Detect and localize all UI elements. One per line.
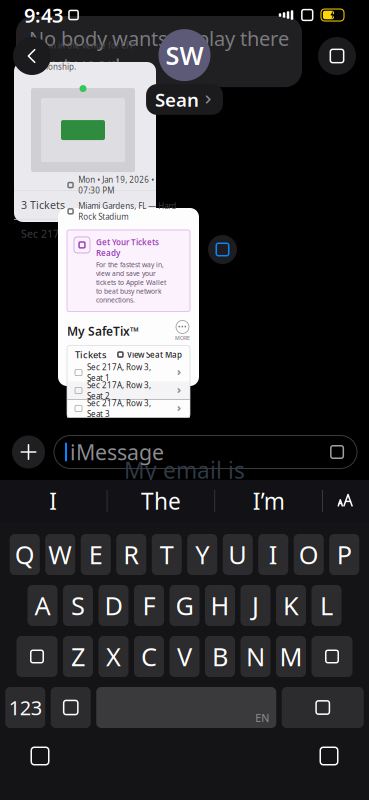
staticText: X [106,640,121,673]
button[interactable]: P [329,534,359,575]
staticText: Sec 217A, Row 3, Seat 3 [87,398,151,419]
staticText: L [320,589,333,622]
staticText: My email is [124,455,245,485]
staticText: Tickets [75,348,107,361]
button[interactable]: Y [187,534,217,575]
staticText: Miami Gardens, FL — Hard Rock Stadium [78,201,176,222]
button[interactable]: X [98,636,128,677]
staticText: A [34,589,50,622]
staticText: M [279,640,302,673]
staticText: ••• [178,322,187,331]
button[interactable]: Back [13,37,51,75]
staticText: Q [15,538,35,571]
staticText: I [269,538,278,571]
button[interactable]: Sec 217A, Row 3, Seat 2 [67,381,190,399]
staticText: J [252,589,259,622]
button[interactable]: I [258,534,288,575]
button[interactable]: Text formatting [323,480,369,522]
button[interactable]: Space [96,687,276,728]
button[interactable]: I’m [215,480,322,522]
staticText: 9:43 [24,2,63,28]
button[interactable]: Emoji [51,687,91,728]
button[interactable]: More [175,320,190,342]
staticText: K [283,589,299,622]
button[interactable]: F [134,585,164,626]
button[interactable]: O [294,534,324,575]
staticText: Mon • Jan 19, 2026 • 07:30 PM [78,174,154,196]
staticText: I’m [253,486,285,516]
staticText: T [160,538,174,571]
staticText: Sec 217A, Row 3, Seat 1… [21,227,147,241]
button[interactable]: W [45,534,75,575]
button[interactable]: Switch keyboard [18,734,62,778]
staticText: P [337,538,352,571]
staticText: Get Your Tickets Ready [96,237,159,258]
button[interactable]: T [152,534,182,575]
staticText: No body wants to play there next year! [29,25,289,78]
button[interactable]: D [98,585,128,626]
button[interactable]: K [276,585,306,626]
button[interactable]: J [240,585,270,626]
staticText: I [49,486,57,516]
staticText: B [212,640,228,673]
button[interactable]: H [205,585,235,626]
button[interactable]: Sec 217A, Row 3, Seat 3 [67,399,190,417]
button[interactable]: C [134,636,164,677]
staticText: …location in the venue for CFP National … [20,40,135,72]
staticText: View Seat Map [127,349,182,360]
button[interactable]: Sec 217A, Row 3, Seat 1 [67,363,190,381]
button[interactable]: N [240,636,270,677]
button[interactable]: S [63,585,93,626]
staticText: E [89,538,103,571]
button[interactable]: Z [63,636,93,677]
button[interactable]: The [108,480,214,522]
button[interactable]: FaceTime [318,37,356,75]
staticText: O [299,538,319,571]
button[interactable]: Return [282,687,364,728]
staticText: G [175,589,193,622]
staticText: W [48,538,72,571]
staticText: V [177,640,192,673]
button[interactable]: B [205,636,235,677]
staticText: The [141,486,181,516]
button[interactable]: E [81,534,111,575]
button[interactable]: R [116,534,146,575]
staticText: SW [165,38,203,72]
staticText: Y [195,538,209,571]
staticText: F [142,589,155,622]
button[interactable]: Delete [311,636,352,677]
staticText: Sec 217A, Row 3, Seat 2 [87,380,151,401]
staticText: S [71,589,85,622]
staticText: iMessage [70,438,164,466]
staticText: Sec 217A, Row 3, Seat 1 [87,362,151,383]
button[interactable]: SW [146,13,223,99]
button[interactable]: A [27,585,57,626]
button[interactable]: Q [10,534,40,575]
button[interactable]: V [169,636,199,677]
staticText: 3 Tickets [21,198,65,212]
staticText: EN [255,711,269,725]
button[interactable]: L [311,585,341,626]
button[interactable]: Dictation [307,734,351,778]
staticText: U [228,538,247,571]
staticText: Sean [155,87,199,112]
button[interactable]: 123 [5,687,45,728]
button[interactable]: U [223,534,253,575]
staticText: 123 [9,694,42,721]
staticText: H [210,589,229,622]
staticText: C [141,640,157,673]
button[interactable]: G [169,585,199,626]
button[interactable]: M [276,636,306,677]
staticText: For the fastest way in, view and save yo… [96,260,166,304]
button[interactable]: I [0,480,107,522]
button[interactable]: Save to Wallet [208,235,237,264]
staticText: Z [71,640,85,673]
staticText: My SafeTix™ [67,323,139,339]
staticText: D [104,589,122,622]
button[interactable]: Add attachment [12,435,45,468]
button[interactable]: Shift [16,636,57,677]
staticText: MORE [175,334,190,342]
staticText: R [123,538,139,571]
button[interactable]: iMessage [54,435,357,468]
staticText: N [246,640,265,673]
